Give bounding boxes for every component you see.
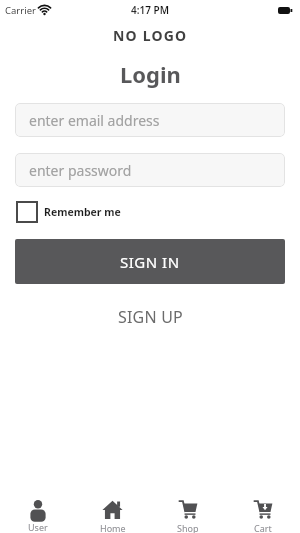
button[interactable]: Remember me (16, 201, 121, 223)
staticText: enter password (29, 161, 132, 180)
staticText: Carrier (5, 4, 36, 17)
staticText: Remember me (44, 205, 121, 219)
staticText: 4:17 PM (131, 3, 169, 17)
staticText: SIGN UP (118, 306, 183, 328)
staticText: SIGN IN (120, 252, 180, 272)
button[interactable]: enter password (15, 153, 285, 187)
staticText: Home (100, 522, 126, 533)
button[interactable]: Shop (150, 499, 225, 533)
button[interactable]: User (0, 499, 75, 533)
staticText: enter email address (29, 111, 160, 130)
button[interactable]: SIGN UP (0, 306, 300, 328)
button[interactable]: Home (75, 499, 150, 533)
button[interactable]: Cart (225, 499, 300, 533)
staticText: NO LOGO (113, 26, 188, 45)
button[interactable]: enter email address (15, 103, 285, 137)
button[interactable]: SIGN IN (15, 239, 285, 284)
staticText: User (28, 521, 48, 533)
staticText: Shop (177, 522, 199, 533)
staticText: Login (120, 59, 181, 89)
staticText: Cart (254, 522, 272, 533)
